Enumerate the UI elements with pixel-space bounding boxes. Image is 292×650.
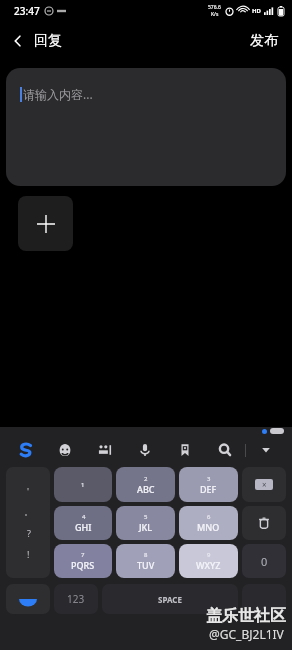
button[interactable]: 3 xyxy=(179,467,238,502)
button[interactable]: Collapse keyboard xyxy=(246,435,286,465)
staticText: @GC_BJ2L1IV xyxy=(209,626,284,642)
staticText: 6 xyxy=(207,513,211,521)
staticText: 发布 xyxy=(250,32,278,50)
button[interactable]: 发布 xyxy=(236,26,292,56)
staticText: ! xyxy=(27,548,30,560)
staticText: 2 xyxy=(144,475,148,483)
button[interactable]: 123 xyxy=(54,584,98,614)
button[interactable]: 2 xyxy=(116,467,175,502)
staticText: 请输入内容... xyxy=(23,86,93,102)
button[interactable]: Language xyxy=(6,584,50,614)
button[interactable]: 回复 xyxy=(0,26,70,56)
button[interactable]: 7 xyxy=(54,544,112,578)
staticText: JKL xyxy=(139,521,153,533)
button[interactable]: 9 xyxy=(179,544,238,578)
button[interactable] xyxy=(242,584,286,614)
staticText: 123 xyxy=(67,592,85,606)
staticText: 。 xyxy=(24,506,33,517)
staticText: 回复 xyxy=(34,32,62,50)
staticText: ? xyxy=(27,527,31,539)
button[interactable]: 6 xyxy=(179,506,238,540)
button[interactable]: 8 xyxy=(116,544,175,578)
button[interactable]: 0 xyxy=(242,544,286,578)
staticText: 7 xyxy=(81,551,85,559)
button[interactable]: 4 xyxy=(54,506,112,540)
staticText: 9 xyxy=(207,551,211,559)
button[interactable]: Clear xyxy=(242,506,286,540)
staticText: HD xyxy=(252,7,261,15)
staticText: SPACE xyxy=(158,594,182,605)
staticText: MNO xyxy=(197,521,220,533)
staticText: WXYZ xyxy=(196,559,221,571)
staticText: ABC xyxy=(137,483,155,495)
staticText: GHI xyxy=(75,521,92,533)
button[interactable]: Search xyxy=(205,435,245,465)
staticText: 4 xyxy=(82,513,86,521)
button[interactable]: SPACE xyxy=(102,584,238,614)
staticText: 8 xyxy=(144,551,148,559)
button[interactable]: 1 xyxy=(54,467,112,502)
staticText: 23:47 xyxy=(14,4,40,18)
staticText: 1 xyxy=(81,481,85,489)
staticText: K/s xyxy=(211,11,219,18)
button[interactable]: ' xyxy=(6,467,50,578)
button[interactable]: Clipboard xyxy=(165,435,205,465)
staticText: ' xyxy=(27,485,30,497)
button[interactable]: Voice input xyxy=(125,435,165,465)
staticText: 576.6 xyxy=(208,4,221,11)
staticText: 3 xyxy=(207,475,211,483)
staticText: PQRS xyxy=(71,559,95,571)
staticText: DEF xyxy=(200,483,217,495)
staticText: 0 xyxy=(261,554,268,569)
button[interactable]: Add image xyxy=(18,196,73,251)
staticText: 5 xyxy=(144,513,148,521)
button[interactable]: Emoji xyxy=(45,435,85,465)
button[interactable]: 5 xyxy=(116,506,175,540)
button[interactable]: 请输入内容... xyxy=(6,68,286,186)
button[interactable]: Sogou input xyxy=(6,435,45,465)
button[interactable]: Contacts xyxy=(85,435,125,465)
staticText: × xyxy=(262,479,267,490)
staticText: TUV xyxy=(137,559,155,571)
button[interactable]: Backspace xyxy=(242,467,286,502)
staticText: 盖乐世社区 xyxy=(206,606,286,626)
